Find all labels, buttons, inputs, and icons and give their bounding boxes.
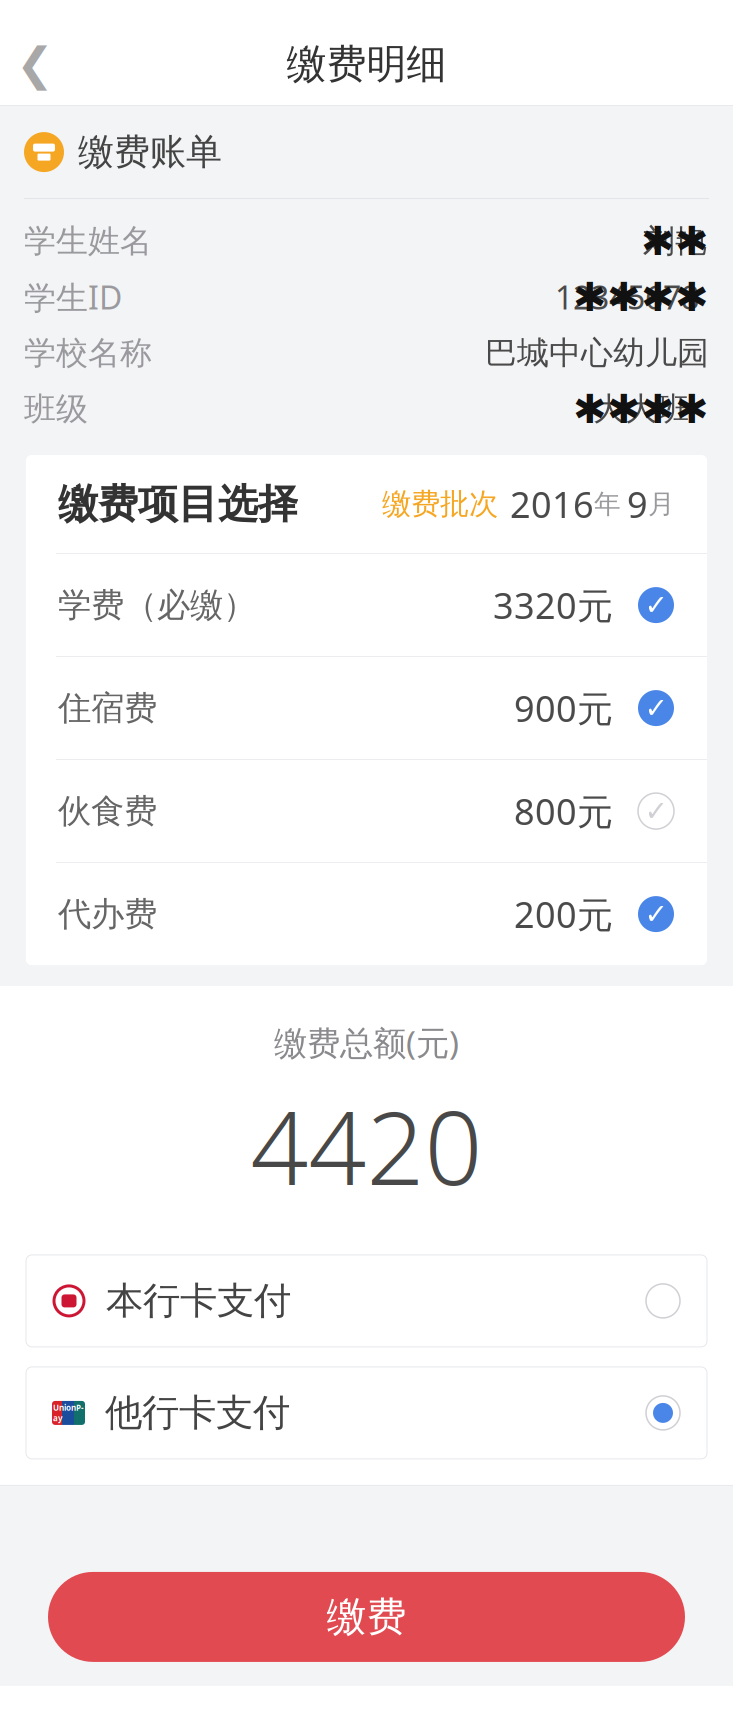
staticText: 200元 [514, 890, 613, 938]
staticText: 2016 [510, 480, 594, 528]
staticText: 代办费 [58, 894, 157, 934]
staticText: 缴费总额(元) [274, 1020, 459, 1064]
staticText: ✱✱ [641, 218, 709, 264]
staticText: ✓ [644, 589, 667, 621]
staticText: 巴城中心幼儿园 [485, 333, 709, 373]
staticText: 学生ID [24, 276, 122, 318]
button[interactable]: UnionPay [26, 1367, 707, 1459]
staticText: 缴费账单 [78, 130, 222, 174]
staticText: ✱✱✱✱ [573, 386, 709, 432]
staticText: 缴费明细 [286, 39, 446, 89]
staticText: ✓ [644, 898, 667, 930]
staticText: 3320元 [493, 581, 613, 629]
button[interactable]: 住宿费 [26, 657, 707, 759]
staticText: 住宿费 [58, 688, 157, 728]
staticText: 本行卡支付 [106, 1278, 291, 1324]
staticText: ❮ [16, 38, 54, 90]
staticText: ✓ [644, 795, 667, 827]
staticText: 800元 [514, 787, 613, 835]
staticText: 学费（必缴） [58, 585, 256, 625]
button[interactable]: 本行卡支付 [26, 1255, 707, 1347]
staticText: 伙食费 [58, 791, 157, 831]
button[interactable]: 伙食费 [26, 760, 707, 862]
staticText: 学校名称 [24, 333, 152, 373]
staticText: 刘艳 [643, 221, 707, 261]
staticText: 班级 [24, 389, 88, 429]
staticText: 年 [594, 488, 621, 520]
button[interactable]: 返回 [0, 29, 70, 99]
staticText: 缴费批次 [382, 486, 498, 522]
button[interactable]: 缴费 [48, 1572, 685, 1662]
staticText: 900元 [514, 684, 613, 732]
staticText: 学生姓名 [24, 221, 152, 261]
staticText: 12345678 [555, 276, 699, 318]
staticText: 大大班 [593, 389, 689, 429]
staticText: 9 [627, 480, 648, 528]
button[interactable]: 代办费 [26, 863, 707, 965]
staticText: 月 [648, 488, 675, 520]
staticText: 他行卡支付 [105, 1390, 290, 1436]
button[interactable]: 学费（必缴） [26, 554, 707, 656]
staticText: 缴费项目选择 [58, 479, 298, 529]
staticText: ✓ [644, 692, 667, 724]
staticText: ✱✱✱✱ [545, 274, 709, 320]
staticText: 缴费 [326, 1592, 406, 1641]
staticText: 4420 [250, 1078, 482, 1213]
staticText: UnionPay [53, 1402, 84, 1423]
